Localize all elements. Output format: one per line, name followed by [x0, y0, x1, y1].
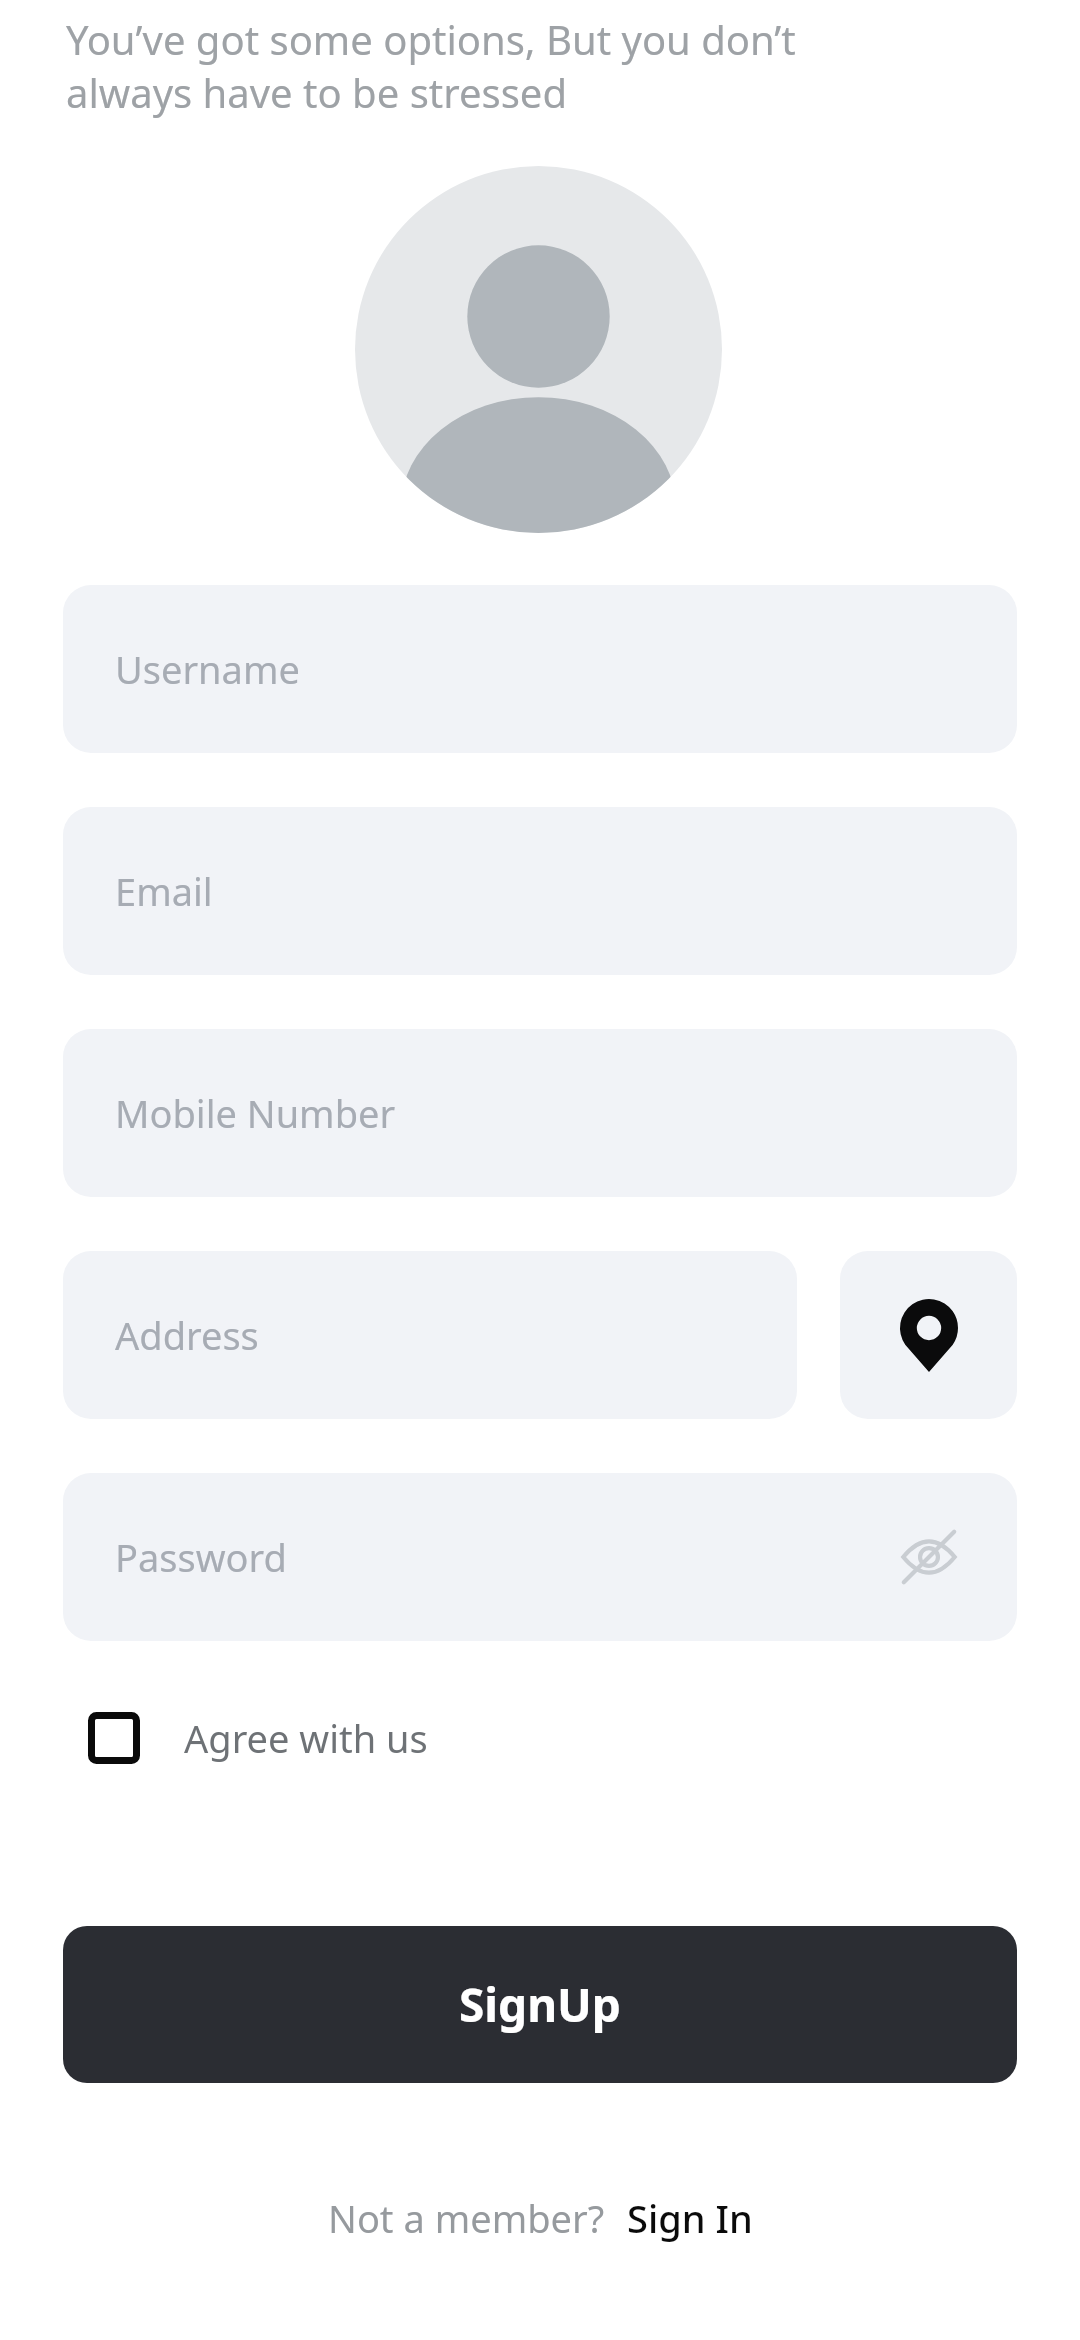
- button[interactable]: Sign In: [627, 2192, 753, 2244]
- staticText: Mobile Number: [115, 1087, 396, 1139]
- staticText: Username: [115, 643, 300, 695]
- staticText: Sign In: [627, 2192, 753, 2244]
- staticText: Email: [115, 865, 213, 917]
- button[interactable]: Password: [63, 1473, 1017, 1641]
- button[interactable]: Profile photo: [355, 166, 722, 533]
- button[interactable]: Username: [63, 585, 1017, 753]
- staticText: Agree with us: [184, 1712, 428, 1764]
- button[interactable]: Agree with us: [88, 1694, 528, 1782]
- button[interactable]: Email: [63, 807, 1017, 975]
- button[interactable]: Mobile Number: [63, 1029, 1017, 1197]
- button[interactable]: SignUp: [63, 1926, 1017, 2083]
- staticText: SignUp: [459, 1973, 621, 2036]
- button[interactable]: Address: [63, 1251, 797, 1419]
- staticText: Not a member?: [328, 2192, 605, 2244]
- staticText: Password: [115, 1531, 287, 1583]
- staticText: You’ve got some options, But you don’t a…: [66, 12, 986, 120]
- other: Show password: [901, 1529, 957, 1585]
- staticText: Address: [115, 1309, 259, 1361]
- button[interactable]: Pick location: [840, 1251, 1017, 1419]
